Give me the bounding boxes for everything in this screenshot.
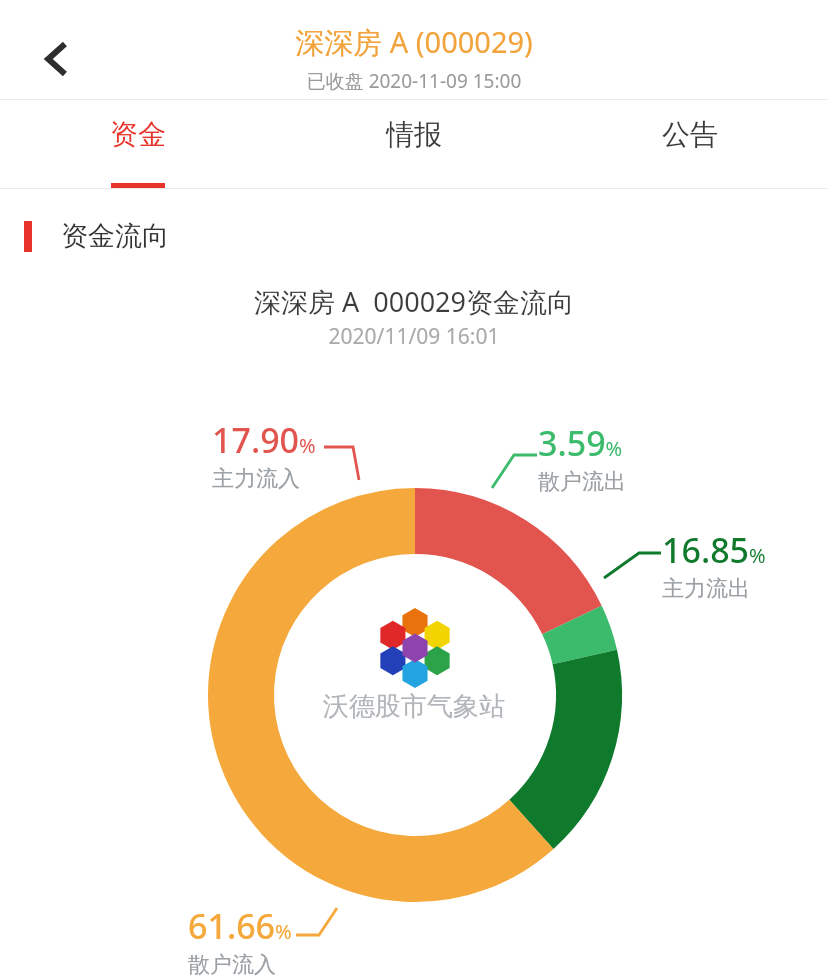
staticText: 深深房 A (000029) [0, 22, 828, 62]
staticText: 沃德股市气象站 [0, 690, 828, 723]
staticText: 深深房 A 000029资金流向 [0, 283, 828, 320]
button[interactable]: 情报 [276, 100, 552, 188]
staticText: 主力流出 [662, 575, 750, 603]
staticText: 散户流入 [188, 951, 276, 978]
button[interactable]: 公告 [552, 100, 828, 188]
button[interactable]: 资金 [0, 100, 276, 188]
staticText: 散户流出 [538, 468, 626, 496]
staticText: 16.85% [662, 527, 766, 573]
button[interactable]: Back [18, 20, 96, 98]
staticText: 公告 [662, 117, 718, 152]
staticText: 17.90% [212, 417, 316, 463]
staticText: 已收盘 2020-11-09 15:00 [0, 68, 828, 94]
staticText: 2020/11/09 16:01 [0, 322, 828, 351]
staticText: 主力流入 [212, 465, 300, 493]
staticText: 资金 [110, 117, 166, 152]
staticText: 3.59% [538, 420, 623, 466]
staticText: 资金流向 [61, 219, 169, 253]
staticText: 情报 [386, 117, 442, 152]
staticText: 61.66% [188, 903, 292, 949]
